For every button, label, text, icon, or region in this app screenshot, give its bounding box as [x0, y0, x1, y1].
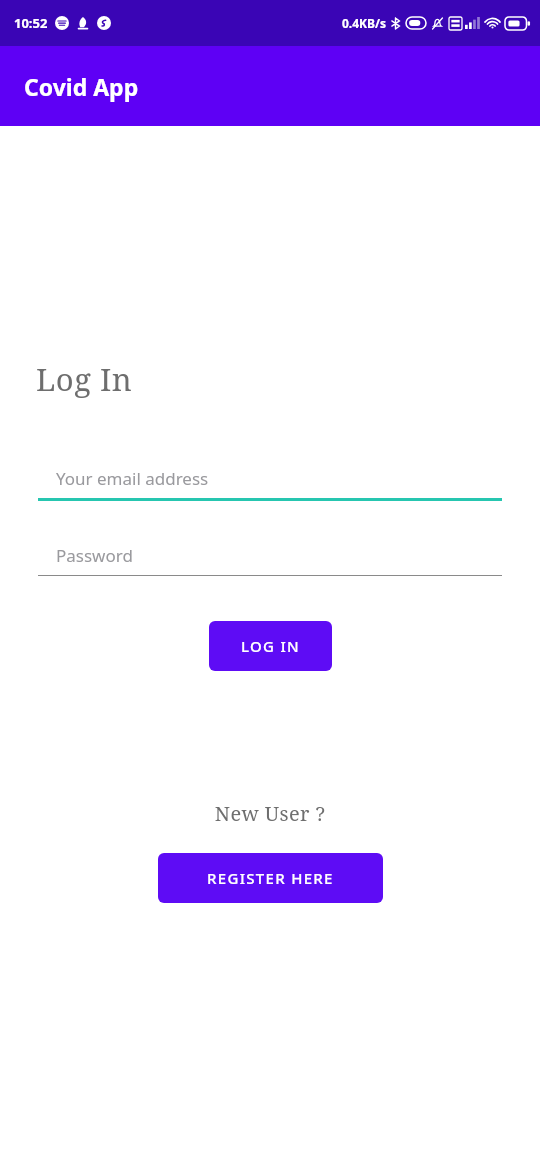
button[interactable]: Password [38, 535, 502, 576]
button[interactable]: Your email address [38, 458, 502, 501]
staticText: 0.4KB/s [342, 15, 387, 31]
staticText: LOG IN [241, 636, 301, 656]
button[interactable]: REGISTER HERE [158, 853, 383, 903]
button[interactable]: LOG IN [209, 621, 332, 671]
staticText: 10:52 [14, 14, 48, 32]
staticText: New User ? [0, 800, 540, 827]
staticText: Password [56, 544, 133, 567]
staticText: Log In [36, 358, 133, 400]
staticText: REGISTER HERE [207, 868, 334, 888]
staticText: Your email address [56, 467, 209, 490]
staticText: Covid App [24, 71, 139, 102]
